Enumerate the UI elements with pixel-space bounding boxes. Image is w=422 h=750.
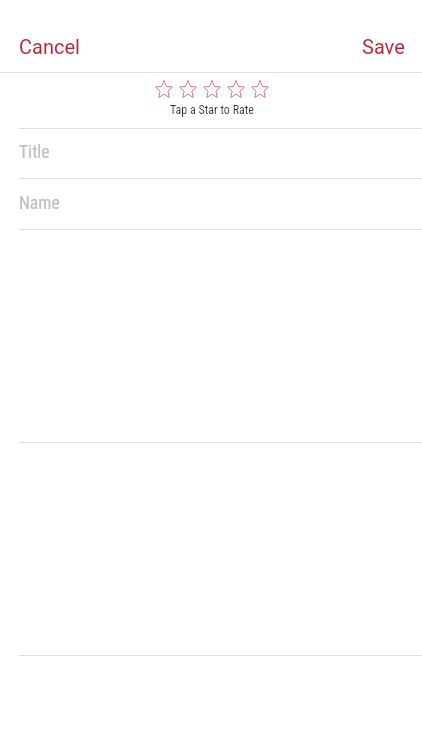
staticText: Cancel <box>19 35 80 58</box>
staticText: Tap a Star to Rate <box>170 103 254 117</box>
button[interactable]: Tap a Star to Rate <box>170 103 254 117</box>
staticText: Name <box>19 193 60 214</box>
button[interactable]: Rate 2 star <box>176 78 200 100</box>
button[interactable]: Rate 4 star <box>224 78 248 100</box>
button[interactable]: Rate 3 star <box>200 78 224 100</box>
staticText: Save <box>362 35 405 58</box>
button[interactable]: Rate 5 star <box>248 78 272 100</box>
button[interactable]: Cancel <box>0 25 94 67</box>
button[interactable]: Name <box>0 179 422 229</box>
staticText: Title <box>19 142 50 163</box>
button[interactable]: Rate 1 star <box>152 78 176 100</box>
button[interactable]: Title <box>0 129 422 178</box>
button[interactable]: Save <box>348 25 422 67</box>
